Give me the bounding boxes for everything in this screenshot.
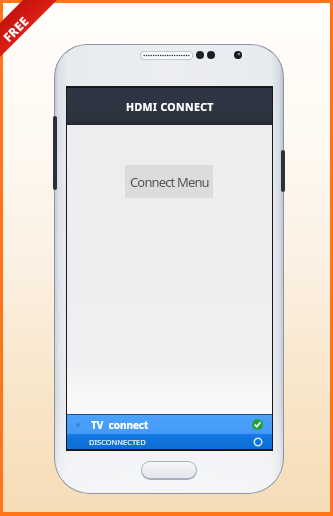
staticText: FREE — [0, 12, 30, 43]
button[interactable]: Connect Menu — [125, 165, 213, 198]
staticText: HDMI CONNECT — [126, 100, 214, 114]
staticText: DISCONNECTED — [89, 437, 146, 447]
button[interactable]: TV connect — [67, 415, 272, 434]
staticText: Connect Menu — [130, 173, 209, 191]
button[interactable]: DISCONNECTED — [67, 434, 272, 449]
staticText: TV connect — [91, 418, 149, 432]
button[interactable]: Home — [142, 462, 196, 478]
